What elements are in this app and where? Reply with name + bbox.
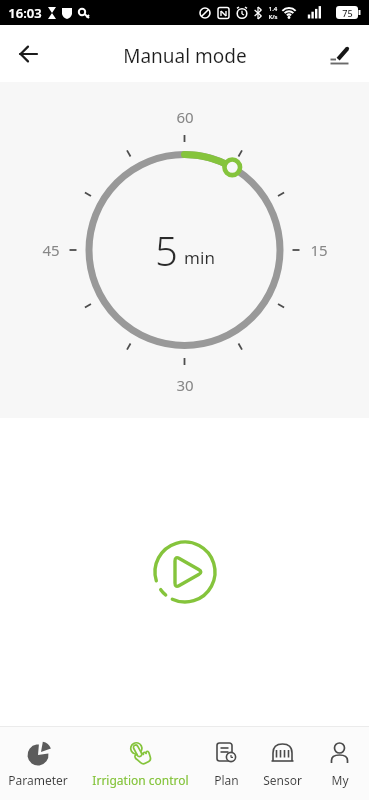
staticText: 15 bbox=[310, 240, 328, 260]
staticText: Manual mode bbox=[123, 43, 247, 69]
staticText: 60 bbox=[176, 107, 194, 127]
staticText: Plan bbox=[214, 772, 239, 788]
button[interactable]: Sensor bbox=[263, 740, 302, 788]
staticText: 16:03 bbox=[8, 4, 42, 22]
staticText: Parameter bbox=[8, 772, 68, 788]
button[interactable] bbox=[150, 537, 220, 607]
button[interactable] bbox=[323, 37, 357, 71]
staticText: 1.4 K/s bbox=[268, 5, 278, 21]
button[interactable] bbox=[12, 37, 46, 71]
staticText: My bbox=[331, 772, 349, 788]
staticText: 45 bbox=[42, 240, 60, 260]
button[interactable]: My bbox=[326, 740, 353, 788]
staticText: 75 bbox=[342, 7, 353, 19]
staticText: Sensor bbox=[263, 772, 302, 788]
button[interactable]: Parameter bbox=[8, 740, 68, 788]
staticText: Irrigation control bbox=[92, 772, 189, 788]
staticText: min bbox=[184, 246, 215, 269]
button[interactable]: Irrigation control bbox=[92, 740, 189, 788]
staticText: 5 bbox=[155, 223, 178, 277]
button[interactable]: Plan bbox=[213, 740, 240, 788]
staticText: 30 bbox=[176, 375, 194, 395]
